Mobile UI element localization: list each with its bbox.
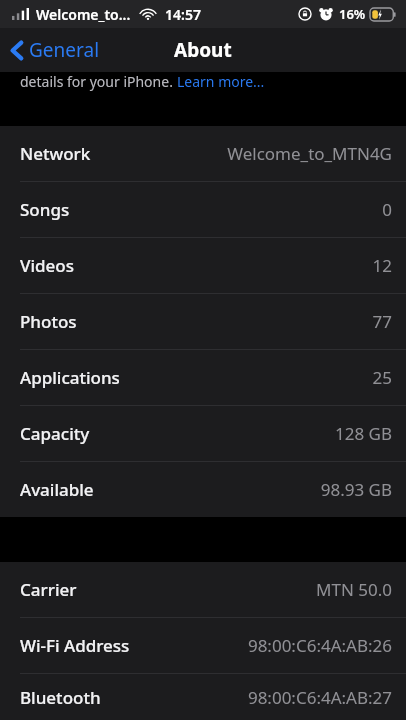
staticText: 98.93 GB [320, 478, 392, 501]
button[interactable]: Capacity [0, 406, 406, 462]
button[interactable]: Available [0, 462, 406, 517]
button[interactable]: Videos [0, 238, 406, 294]
staticText: 98:00:C6:4A:AB:27 [247, 686, 392, 709]
button[interactable]: General [0, 33, 110, 67]
staticText: Carrier [20, 578, 77, 601]
staticText: Network [20, 142, 91, 165]
button[interactable]: Wi-Fi Address [0, 618, 406, 674]
staticText: 14:57 [165, 5, 201, 24]
staticText: details for your iPhone. [20, 72, 177, 91]
staticText: Wi-Fi Address [20, 634, 130, 657]
staticText: Welcome_to_MTN4G [227, 142, 392, 165]
staticText: Welcome_to... [36, 5, 131, 24]
staticText: 0 [382, 198, 392, 221]
staticText: Available [20, 478, 94, 501]
staticText: Applications [20, 366, 120, 389]
button[interactable]: Songs [0, 182, 406, 238]
staticText: 98:00:C6:4A:AB:26 [247, 634, 392, 657]
staticText: 12 [372, 254, 392, 277]
staticText: 77 [372, 310, 392, 333]
button[interactable]: Learn more... [177, 72, 265, 91]
staticText: About [174, 37, 232, 63]
button[interactable]: Photos [0, 294, 406, 350]
staticText: 128 GB [334, 422, 392, 445]
staticText: 25 [372, 366, 392, 389]
staticText: MTN 50.0 [316, 578, 392, 601]
staticText: Photos [20, 310, 77, 333]
staticText: Songs [20, 198, 70, 221]
staticText: Videos [20, 254, 74, 277]
button[interactable]: Carrier [0, 562, 406, 618]
staticText: General [29, 37, 100, 63]
button[interactable]: Bluetooth [0, 674, 406, 720]
button[interactable]: Network [0, 126, 406, 182]
staticText: 16% [339, 5, 366, 23]
staticText: Bluetooth [20, 686, 101, 709]
button[interactable]: Applications [0, 350, 406, 406]
staticText: Capacity [20, 422, 90, 445]
